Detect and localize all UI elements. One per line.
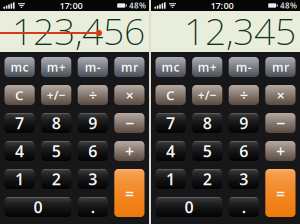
staticText: 2 bbox=[203, 168, 212, 190]
button[interactable]: m+ bbox=[192, 57, 222, 77]
button[interactable]: m- bbox=[78, 57, 108, 77]
staticText: 7 bbox=[15, 112, 24, 134]
button[interactable]: 6 bbox=[78, 141, 108, 161]
button[interactable]: × bbox=[265, 85, 295, 105]
staticText: + bbox=[125, 140, 134, 162]
staticText: . bbox=[242, 196, 246, 218]
staticText: m- bbox=[236, 59, 252, 75]
staticText: 0 bbox=[184, 196, 193, 218]
button[interactable]: 5 bbox=[41, 141, 71, 161]
staticText: 1 bbox=[15, 168, 24, 190]
button[interactable]: +/− bbox=[192, 85, 222, 105]
staticText: mc bbox=[162, 59, 180, 75]
staticText: − bbox=[125, 112, 134, 134]
staticText: ÷ bbox=[240, 85, 248, 105]
button[interactable]: + bbox=[114, 141, 144, 161]
staticText: 123,456 bbox=[12, 6, 145, 55]
button[interactable]: +/− bbox=[41, 85, 71, 105]
staticText: m+ bbox=[198, 59, 217, 75]
button[interactable]: 7 bbox=[155, 113, 186, 133]
button[interactable]: 4 bbox=[4, 141, 35, 161]
button[interactable]: 1 bbox=[4, 169, 35, 189]
button[interactable]: + bbox=[265, 141, 295, 161]
staticText: mc bbox=[11, 59, 29, 75]
button[interactable]: = bbox=[114, 169, 144, 217]
staticText: ÷ bbox=[89, 85, 97, 105]
button[interactable]: 9 bbox=[229, 113, 259, 133]
button[interactable]: . bbox=[78, 197, 108, 217]
button[interactable]: mr bbox=[114, 57, 144, 77]
button[interactable]: m+ bbox=[41, 57, 71, 77]
button[interactable]: = bbox=[265, 169, 295, 217]
staticText: mr bbox=[121, 59, 138, 75]
button[interactable]: 8 bbox=[192, 113, 222, 133]
staticText: 5 bbox=[203, 140, 212, 162]
button[interactable]: mr bbox=[265, 57, 295, 77]
button[interactable]: 2 bbox=[41, 169, 71, 189]
staticText: × bbox=[276, 85, 284, 105]
button[interactable]: 3 bbox=[78, 169, 108, 189]
staticText: m- bbox=[85, 59, 101, 75]
button[interactable]: m- bbox=[229, 57, 259, 77]
button[interactable]: 0 bbox=[155, 197, 222, 217]
staticText: 4 bbox=[166, 140, 175, 162]
staticText: 1 bbox=[166, 168, 175, 190]
button[interactable]: 3 bbox=[229, 169, 259, 189]
button[interactable]: 9 bbox=[78, 113, 108, 133]
button[interactable]: . bbox=[229, 197, 259, 217]
staticText: 5 bbox=[52, 140, 61, 162]
button[interactable]: 0 bbox=[4, 197, 71, 217]
button[interactable]: 7 bbox=[4, 113, 35, 133]
button[interactable]: mc bbox=[4, 57, 35, 77]
staticText: + bbox=[276, 140, 285, 162]
staticText: 9 bbox=[239, 112, 248, 134]
staticText: 6 bbox=[239, 140, 248, 162]
button[interactable]: 6 bbox=[229, 141, 259, 161]
button[interactable]: C bbox=[155, 85, 186, 105]
staticText: 6 bbox=[88, 140, 97, 162]
staticText: 12,345 bbox=[184, 6, 296, 55]
button[interactable]: 4 bbox=[155, 141, 186, 161]
staticText: m+ bbox=[47, 59, 66, 75]
staticText: 48% bbox=[280, 0, 297, 11]
staticText: 4 bbox=[15, 140, 24, 162]
staticText: × bbox=[125, 85, 133, 105]
button[interactable]: 2 bbox=[192, 169, 222, 189]
staticText: +/− bbox=[47, 87, 66, 103]
staticText: − bbox=[276, 112, 285, 134]
staticText: 3 bbox=[239, 168, 248, 190]
button[interactable]: 5 bbox=[192, 141, 222, 161]
staticText: 7 bbox=[166, 112, 175, 134]
staticText: 17:00 bbox=[210, 0, 233, 12]
staticText: mr bbox=[272, 59, 289, 75]
staticText: +/− bbox=[198, 87, 217, 103]
button[interactable]: 8 bbox=[41, 113, 71, 133]
staticText: 3 bbox=[88, 168, 97, 190]
staticText: 2 bbox=[52, 168, 61, 190]
button[interactable]: − bbox=[265, 113, 295, 133]
button[interactable]: C bbox=[4, 85, 35, 105]
staticText: 8 bbox=[203, 112, 212, 134]
staticText: = bbox=[125, 182, 134, 204]
button[interactable]: mc bbox=[155, 57, 186, 77]
button[interactable]: × bbox=[114, 85, 144, 105]
staticText: = bbox=[276, 182, 285, 204]
staticText: 17:00 bbox=[59, 0, 82, 12]
button[interactable]: − bbox=[114, 113, 144, 133]
button[interactable]: 1 bbox=[155, 169, 186, 189]
staticText: 48% bbox=[129, 0, 146, 11]
staticText: 8 bbox=[52, 112, 61, 134]
staticText: 9 bbox=[88, 112, 97, 134]
staticText: 0 bbox=[33, 196, 42, 218]
staticText: . bbox=[91, 196, 95, 218]
staticText: C bbox=[15, 86, 24, 104]
button[interactable]: ÷ bbox=[229, 85, 259, 105]
staticText: C bbox=[166, 86, 175, 104]
button[interactable]: ÷ bbox=[78, 85, 108, 105]
